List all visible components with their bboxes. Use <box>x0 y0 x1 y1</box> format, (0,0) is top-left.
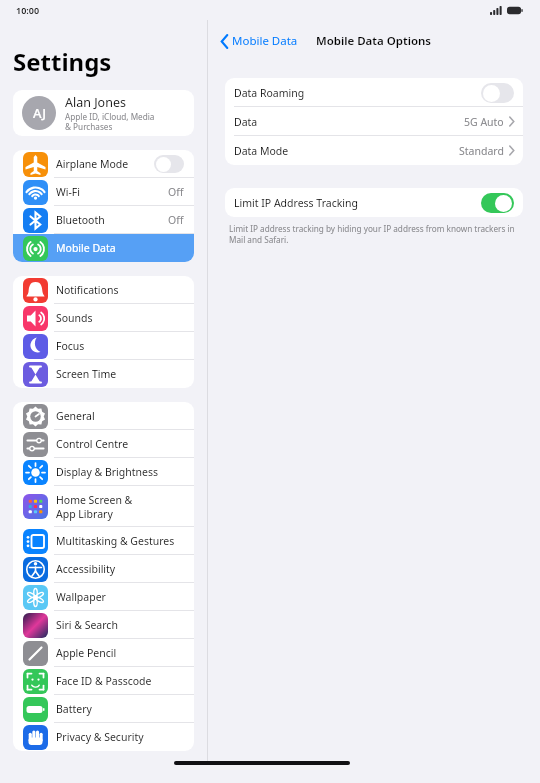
button[interactable]: Off <box>154 155 184 173</box>
staticText: Mobile Data Options <box>316 33 432 49</box>
staticText: Mobile Data <box>232 33 298 49</box>
button[interactable]: Data Mode <box>225 136 523 165</box>
button[interactable]: Sounds <box>13 304 194 332</box>
button[interactable]: Control Centre <box>13 430 194 458</box>
staticText: Apple ID, iCloud, Media & Purchases <box>65 111 155 133</box>
button[interactable]: Privacy & Security <box>13 723 194 751</box>
staticText: Accessibility <box>56 562 116 576</box>
button[interactable]: Display & Brightness <box>13 458 194 486</box>
staticText: Limit IP Address Tracking <box>234 196 481 210</box>
button[interactable]: Mobile Data <box>13 234 194 262</box>
button[interactable]: Wi-Fi <box>13 178 194 206</box>
button[interactable]: Home Screen & <box>13 486 194 527</box>
button[interactable]: Siri & Search <box>13 611 194 639</box>
button[interactable]: Screen Time <box>13 360 194 388</box>
staticText: General <box>56 409 95 423</box>
staticText: Face ID & Passcode <box>56 674 152 688</box>
staticText: Data <box>234 115 464 129</box>
button[interactable]: Multitasking & Gestures <box>13 527 194 555</box>
staticText: Data Mode <box>234 144 459 158</box>
staticText: Privacy & Security <box>56 730 144 744</box>
button[interactable]: Data <box>225 107 523 136</box>
staticText: App Library <box>56 507 113 521</box>
staticText: Wallpaper <box>56 590 106 604</box>
staticText: Notifications <box>56 283 119 297</box>
staticText: AJ <box>33 104 46 122</box>
staticText: Apple Pencil <box>56 646 117 660</box>
staticText: Standard <box>459 144 504 158</box>
staticText: Sounds <box>56 311 93 325</box>
button[interactable]: AJ <box>13 90 194 136</box>
staticText: Off <box>168 185 184 199</box>
button[interactable]: Off <box>481 83 514 103</box>
staticText: Control Centre <box>56 437 129 451</box>
button[interactable]: Focus <box>13 332 194 360</box>
staticText: Battery <box>56 702 92 716</box>
button[interactable]: Wallpaper <box>13 583 194 611</box>
button[interactable]: Limit IP Address Tracking <box>225 188 523 217</box>
button[interactable]: Data Roaming <box>225 78 523 107</box>
button[interactable]: Bluetooth <box>13 206 194 234</box>
staticText: Display & Brightness <box>56 465 159 479</box>
staticText: Siri & Search <box>56 618 118 632</box>
staticText: Limit IP address tracking by hiding your… <box>229 223 519 245</box>
staticText: Off <box>168 213 184 227</box>
staticText: Mobile Data <box>56 241 116 255</box>
staticText: Home Screen & <box>56 493 133 507</box>
staticText: Screen Time <box>56 367 117 381</box>
staticText: Data Roaming <box>234 86 481 100</box>
staticText: Airplane Mode <box>56 157 129 171</box>
button[interactable]: Face ID & Passcode <box>13 667 194 695</box>
button[interactable]: Apple Pencil <box>13 639 194 667</box>
staticText: Wi-Fi <box>56 185 81 199</box>
staticText: Alan Jones <box>65 94 126 111</box>
button[interactable]: Accessibility <box>13 555 194 583</box>
button[interactable]: General <box>13 402 194 430</box>
staticText: Multitasking & Gestures <box>56 534 175 548</box>
button[interactable]: Battery <box>13 695 194 723</box>
button[interactable]: Mobile Data <box>218 30 301 52</box>
staticText: 5G Auto <box>464 115 504 129</box>
staticText: Bluetooth <box>56 213 105 227</box>
button[interactable]: On <box>481 193 514 213</box>
button[interactable]: Notifications <box>13 276 194 304</box>
staticText: Focus <box>56 339 85 353</box>
staticText: Settings <box>13 45 112 78</box>
staticText: 10:00 <box>16 4 40 16</box>
button[interactable]: Airplane Mode <box>13 150 194 178</box>
